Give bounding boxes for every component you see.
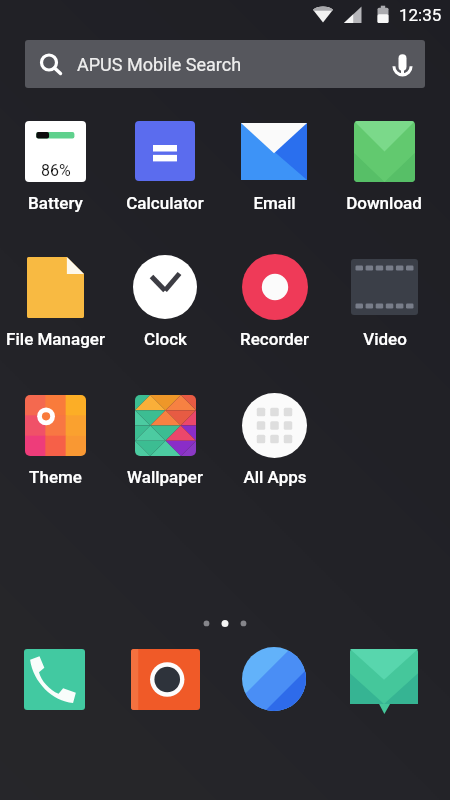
staticText: Download — [346, 193, 422, 213]
button[interactable]: Email — [219, 117, 329, 213]
button[interactable]: Video — [329, 253, 439, 349]
button[interactable]: APUS Mobile Search — [25, 40, 425, 88]
staticText: All Apps — [243, 467, 307, 487]
staticText: Wallpaper — [127, 467, 203, 487]
button[interactable]: Theme — [0, 391, 110, 487]
button[interactable]: All Apps — [219, 391, 329, 487]
button[interactable]: File Manager — [0, 253, 110, 349]
staticText: Battery — [28, 193, 83, 213]
button[interactable]: Calculator — [110, 117, 220, 213]
staticText: Email — [253, 193, 296, 213]
staticText: Clock — [144, 329, 187, 349]
staticText: Video — [363, 329, 407, 349]
staticText: Theme — [29, 467, 82, 487]
button[interactable]: Phone — [24, 649, 85, 710]
button[interactable]: Wallpaper — [110, 391, 220, 487]
button[interactable]: Clock — [110, 253, 220, 349]
button[interactable]: Battery — [0, 117, 110, 213]
staticText: 12:35 — [399, 5, 442, 25]
staticText: APUS Mobile Search — [77, 54, 242, 75]
button[interactable]: Camera — [131, 649, 200, 710]
staticText: File Manager — [6, 329, 105, 349]
button[interactable]: Download — [329, 117, 439, 213]
staticText: Recorder — [240, 329, 309, 349]
button[interactable]: Recorder — [219, 253, 329, 349]
staticText: 86% — [41, 161, 71, 180]
button[interactable]: Browser — [242, 647, 306, 711]
button[interactable]: Messages — [350, 649, 418, 714]
staticText: Calculator — [126, 193, 204, 213]
